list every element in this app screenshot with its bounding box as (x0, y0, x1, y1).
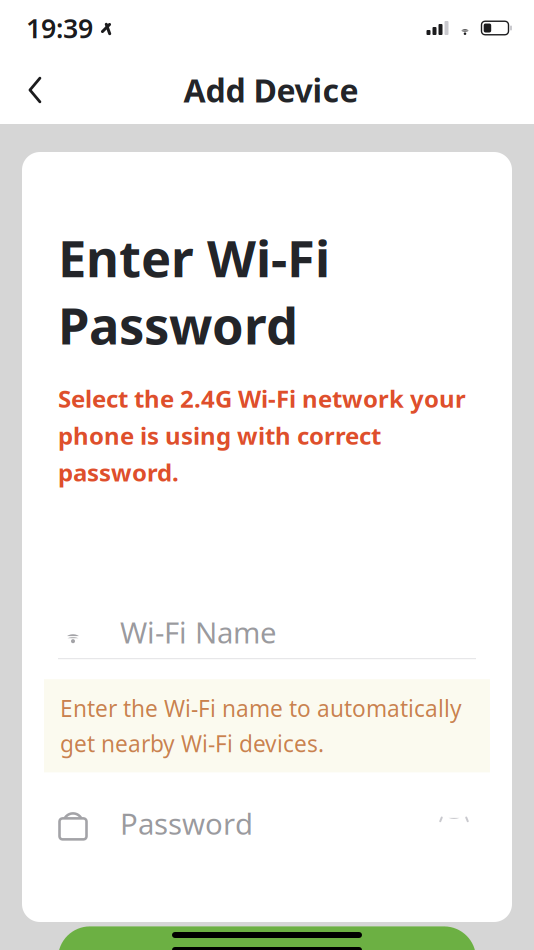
button[interactable]: Back (8, 63, 62, 117)
button[interactable]: Confirm (58, 926, 476, 950)
staticText: 19:39 (26, 10, 93, 46)
staticText: Select the 2.4G Wi-Fi network your phone… (58, 383, 466, 488)
staticText: Add Device (183, 69, 358, 111)
staticText: Confirm (208, 939, 326, 950)
button[interactable]: Show password (432, 801, 476, 845)
staticText: Enter the Wi-Fi name to automatically ge… (60, 693, 462, 758)
staticText: Password (120, 804, 253, 843)
staticText: Wi-Fi Name (120, 613, 277, 652)
staticText: Enter Wi-Fi Password (58, 224, 330, 359)
